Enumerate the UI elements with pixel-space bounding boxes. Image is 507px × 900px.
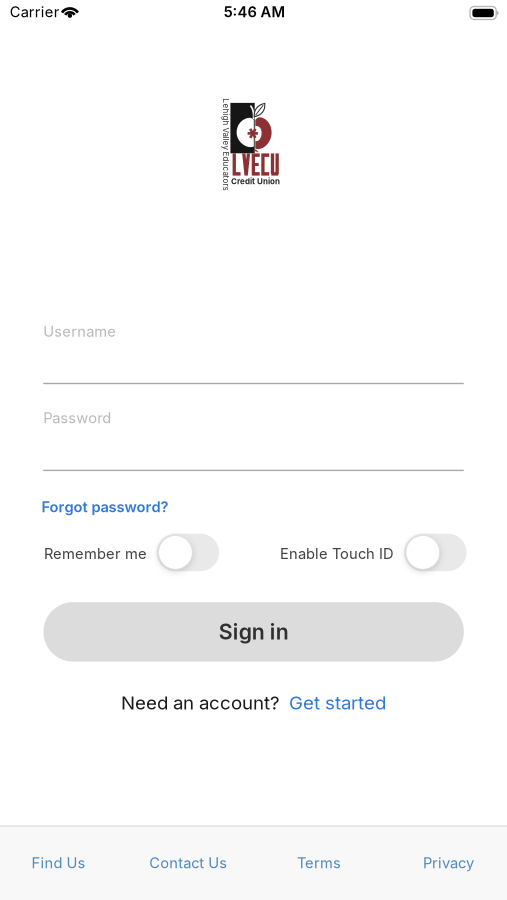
- staticText: Enable Touch ID: [280, 545, 394, 562]
- staticText: Credit Union: [231, 177, 280, 186]
- button[interactable]: Sign in: [43, 602, 464, 662]
- button[interactable]: Enable Touch ID: [404, 534, 466, 571]
- staticText: Carrier: [10, 3, 60, 21]
- button[interactable]: Remember me: [157, 534, 219, 571]
- button[interactable]: Contact Us: [149, 854, 227, 871]
- staticText: Need an account?: [121, 692, 280, 714]
- button[interactable]: Privacy: [423, 854, 474, 871]
- staticText: Username: [43, 323, 116, 340]
- staticText: Remember me: [44, 545, 147, 562]
- button[interactable]: Forgot password?: [42, 498, 169, 515]
- staticText: Find Us: [32, 854, 86, 871]
- button[interactable]: Terms: [297, 854, 341, 871]
- staticText: Sign in: [219, 619, 289, 644]
- staticText: Forgot password?: [42, 498, 169, 515]
- staticText: Lehigh Valley Educators: [180, 140, 272, 149]
- button[interactable]: Get started: [289, 692, 386, 714]
- button[interactable]: Find Us: [32, 854, 86, 871]
- staticText: Privacy: [423, 854, 474, 871]
- staticText: Get started: [289, 692, 386, 714]
- staticText: Terms: [297, 854, 341, 871]
- staticText: Password: [43, 409, 111, 426]
- staticText: Contact Us: [149, 854, 227, 871]
- staticText: 5:46 AM: [224, 3, 286, 21]
